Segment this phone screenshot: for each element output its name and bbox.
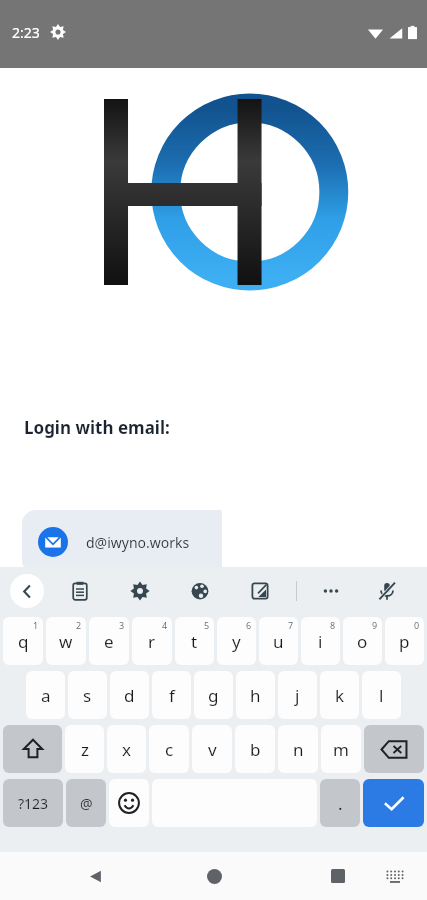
staticText: g <box>208 684 219 707</box>
button[interactable]: c <box>149 725 189 773</box>
staticText: l <box>379 684 384 707</box>
button[interactable]: Enter <box>363 779 424 827</box>
button[interactable]: d <box>110 671 149 719</box>
button[interactable]: Shift <box>3 725 62 773</box>
button[interactable]: o <box>343 617 382 665</box>
staticText: 6 <box>246 619 252 631</box>
staticText: i <box>318 630 323 653</box>
staticText: c <box>165 738 174 761</box>
staticText: v <box>208 738 217 761</box>
staticText: n <box>293 738 304 761</box>
button[interactable]: e <box>89 617 129 665</box>
button[interactable]: Email autofill suggestion <box>22 510 222 574</box>
button[interactable]: n <box>278 725 318 773</box>
button[interactable]: Home <box>194 856 234 896</box>
staticText: s <box>83 684 92 707</box>
button[interactable]: ?123 <box>3 779 63 827</box>
button[interactable]: a <box>26 671 65 719</box>
button[interactable]: Backspace <box>364 725 424 773</box>
button[interactable]: l <box>362 671 401 719</box>
button[interactable]: Emoji <box>109 779 149 827</box>
button[interactable]: Switch keyboard <box>378 859 412 893</box>
button[interactable]: Theme <box>186 577 214 605</box>
staticText: 2 <box>76 619 82 631</box>
staticText: . <box>338 792 343 815</box>
other: Email autofill suggestion <box>38 527 68 557</box>
button[interactable]: Back <box>75 856 115 896</box>
staticText: x <box>122 738 131 761</box>
staticText: ?123 <box>18 794 49 813</box>
staticText: Login with email: <box>24 416 170 439</box>
staticText: 9 <box>372 619 378 631</box>
button[interactable]: t <box>175 617 214 665</box>
button[interactable]: @ <box>66 779 106 827</box>
staticText: k <box>335 684 345 707</box>
button[interactable]: Voice input muted <box>373 577 401 605</box>
staticText: 5 <box>204 619 210 631</box>
button[interactable]: w <box>46 617 86 665</box>
button[interactable]: m <box>321 725 361 773</box>
button[interactable]: f <box>152 671 191 719</box>
button[interactable]: u <box>259 617 298 665</box>
button[interactable]: Clipboard <box>66 577 94 605</box>
staticText: b <box>250 738 261 761</box>
button[interactable]: . <box>320 779 360 827</box>
button[interactable]: r <box>132 617 172 665</box>
button[interactable]: z <box>65 725 104 773</box>
staticText: h <box>250 684 261 707</box>
staticText: r <box>148 630 156 653</box>
button[interactable]: h <box>236 671 275 719</box>
button[interactable]: Back <box>10 574 44 608</box>
staticText: w <box>59 630 73 653</box>
button[interactable]: v <box>192 725 232 773</box>
staticText: p <box>399 630 410 653</box>
staticText: 7 <box>288 619 294 631</box>
button[interactable]: Recent apps <box>318 856 358 896</box>
button[interactable]: Settings <box>126 577 154 605</box>
button[interactable]: i <box>301 617 340 665</box>
button[interactable]: k <box>320 671 359 719</box>
button[interactable]: x <box>107 725 146 773</box>
staticText: 2:23 <box>12 23 40 42</box>
staticText: d <box>124 684 135 707</box>
staticText: a <box>41 684 51 707</box>
staticText: z <box>81 738 89 761</box>
button[interactable]: s <box>68 671 107 719</box>
staticText: 3 <box>119 619 125 631</box>
staticText: m <box>333 738 349 761</box>
staticText: d@iwyno.works <box>86 533 190 552</box>
button[interactable]: Resize keyboard <box>246 577 274 605</box>
staticText: 8 <box>330 619 336 631</box>
staticText: j <box>295 684 300 707</box>
staticText: u <box>273 630 284 653</box>
staticText: e <box>104 630 114 653</box>
button[interactable]: j <box>278 671 317 719</box>
staticText: q <box>18 630 29 653</box>
button[interactable]: More options <box>317 577 345 605</box>
staticText: @ <box>80 794 93 813</box>
button[interactable]: q <box>3 617 43 665</box>
button[interactable]: g <box>194 671 233 719</box>
button[interactable]: p <box>385 617 424 665</box>
button[interactable]: b <box>235 725 275 773</box>
staticText: 0 <box>414 619 420 631</box>
staticText: 1 <box>33 619 39 631</box>
button[interactable]: y <box>217 617 256 665</box>
staticText: o <box>357 630 368 653</box>
staticText: t <box>191 630 198 653</box>
staticText: 4 <box>162 619 168 631</box>
staticText: y <box>232 630 241 653</box>
staticText: f <box>169 684 175 707</box>
